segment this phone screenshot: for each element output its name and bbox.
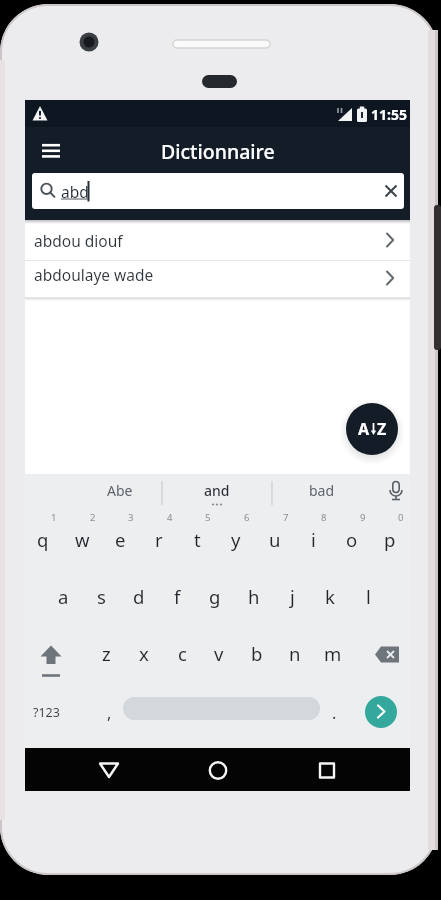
staticText: c	[178, 641, 187, 666]
staticText: 7	[283, 511, 289, 524]
staticText: 5	[205, 511, 211, 524]
staticText: k	[325, 584, 335, 609]
staticText: d	[133, 584, 145, 609]
staticText: Abe	[107, 481, 133, 500]
button[interactable]	[87, 626, 125, 682]
staticText: w	[75, 527, 90, 552]
staticText: 11:55	[371, 105, 407, 124]
staticText: ,	[107, 702, 112, 724]
button[interactable]	[120, 569, 158, 625]
button[interactable]	[256, 513, 294, 569]
staticText: x	[139, 641, 149, 666]
staticText: 6	[244, 511, 250, 524]
button[interactable]	[63, 513, 101, 569]
button[interactable]	[196, 748, 240, 791]
button[interactable]	[294, 513, 332, 569]
staticText: u	[269, 527, 281, 552]
staticText: 4	[167, 511, 173, 524]
button[interactable]	[158, 569, 196, 625]
staticText: n	[289, 641, 301, 666]
staticText: g	[209, 584, 221, 609]
button[interactable]	[87, 748, 131, 791]
staticText: 1	[51, 511, 57, 524]
button[interactable]	[305, 748, 349, 791]
staticText: ?123	[33, 704, 60, 721]
staticText: i	[311, 527, 316, 552]
staticText: e	[115, 527, 126, 552]
button[interactable]	[238, 626, 276, 682]
button[interactable]	[276, 626, 314, 682]
staticText: m	[324, 641, 342, 666]
button[interactable]: abdoulaye wade	[25, 261, 410, 297]
button[interactable]	[371, 513, 409, 569]
staticText: and	[204, 481, 230, 500]
button[interactable]	[45, 474, 279, 512]
button[interactable]	[273, 569, 311, 625]
staticText: abdoulaye wade	[34, 264, 154, 285]
staticText: a	[58, 584, 69, 609]
staticText: z	[102, 641, 111, 666]
button[interactable]	[82, 569, 120, 625]
button[interactable]	[196, 569, 234, 625]
button[interactable]	[178, 513, 216, 569]
staticText: 2	[90, 511, 96, 524]
staticText: o	[346, 527, 358, 552]
button[interactable]	[101, 513, 139, 569]
staticText: Dictionnaire	[161, 138, 275, 165]
staticText: 8	[321, 511, 327, 524]
button[interactable]	[125, 626, 163, 682]
staticText: t	[194, 527, 201, 552]
staticText: h	[248, 584, 260, 609]
staticText: abdou diouf	[34, 230, 123, 251]
staticText: j	[290, 584, 295, 609]
button[interactable]	[349, 569, 387, 625]
button[interactable]	[365, 696, 397, 728]
button[interactable]	[200, 626, 238, 682]
staticText: A	[358, 418, 370, 440]
button[interactable]	[314, 626, 352, 682]
staticText: abd	[61, 181, 89, 202]
button[interactable]	[311, 569, 349, 625]
button[interactable]: abdou diouf	[25, 220, 410, 260]
staticText: bad	[309, 481, 335, 500]
button[interactable]	[333, 513, 371, 569]
button[interactable]	[44, 569, 82, 625]
staticText: q	[37, 527, 49, 552]
button[interactable]: A	[346, 403, 398, 455]
staticText: s	[97, 584, 106, 609]
button[interactable]	[217, 513, 255, 569]
staticText: Z	[377, 418, 387, 440]
button[interactable]	[163, 626, 201, 682]
staticText: 3	[128, 511, 134, 524]
staticText: p	[384, 527, 396, 552]
staticText: .	[332, 702, 337, 724]
button[interactable]	[24, 513, 62, 569]
button[interactable]	[32, 173, 404, 209]
staticText: l	[366, 584, 371, 609]
staticText: 9	[360, 511, 366, 524]
staticText: f	[174, 584, 181, 609]
staticText: r	[155, 527, 163, 552]
button[interactable]	[123, 697, 320, 720]
staticText: y	[231, 527, 241, 552]
button[interactable]	[235, 569, 273, 625]
staticText: v	[214, 641, 224, 666]
staticText: 0	[398, 511, 404, 524]
button[interactable]	[140, 513, 178, 569]
staticText: b	[251, 641, 263, 666]
